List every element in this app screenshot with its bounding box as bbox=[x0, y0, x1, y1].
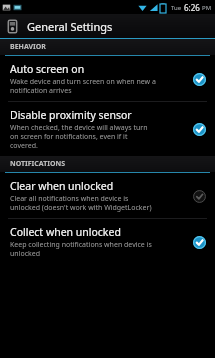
staticText: Clear when unlocked bbox=[10, 179, 114, 193]
button[interactable]: Checked bbox=[191, 121, 207, 137]
staticText: General Settings bbox=[27, 19, 113, 34]
staticText: Auto screen on bbox=[10, 62, 85, 76]
staticText: NOTIFICATIONS bbox=[10, 159, 66, 169]
staticText: Wake device and turn screen on when new … bbox=[10, 77, 156, 95]
other: App icon bbox=[5, 19, 20, 34]
staticText: Tue bbox=[171, 4, 182, 12]
staticText: BEHAVIOR bbox=[10, 42, 46, 52]
staticText: Disable proximity sensor bbox=[10, 108, 132, 122]
button[interactable]: Checked bbox=[191, 71, 207, 87]
button[interactable]: App icon bbox=[0, 14, 215, 38]
staticText: Collect when unlocked bbox=[10, 225, 121, 239]
button[interactable]: Collect when unlocked bbox=[0, 219, 215, 264]
button[interactable]: Clear when unlocked bbox=[0, 173, 215, 218]
staticText: 6:26 bbox=[184, 2, 200, 13]
staticText: Clear all notifications when device is u… bbox=[10, 194, 152, 212]
button[interactable]: Auto screen on bbox=[0, 56, 215, 101]
button[interactable]: Checked bbox=[191, 234, 207, 250]
button[interactable]: Unchecked bbox=[191, 188, 207, 204]
button[interactable]: Disable proximity sensor bbox=[0, 102, 215, 156]
staticText: When checked, the device will always tur… bbox=[10, 123, 148, 150]
staticText: PM bbox=[202, 4, 212, 12]
staticText: Keep collecting notifications when devic… bbox=[10, 240, 152, 258]
